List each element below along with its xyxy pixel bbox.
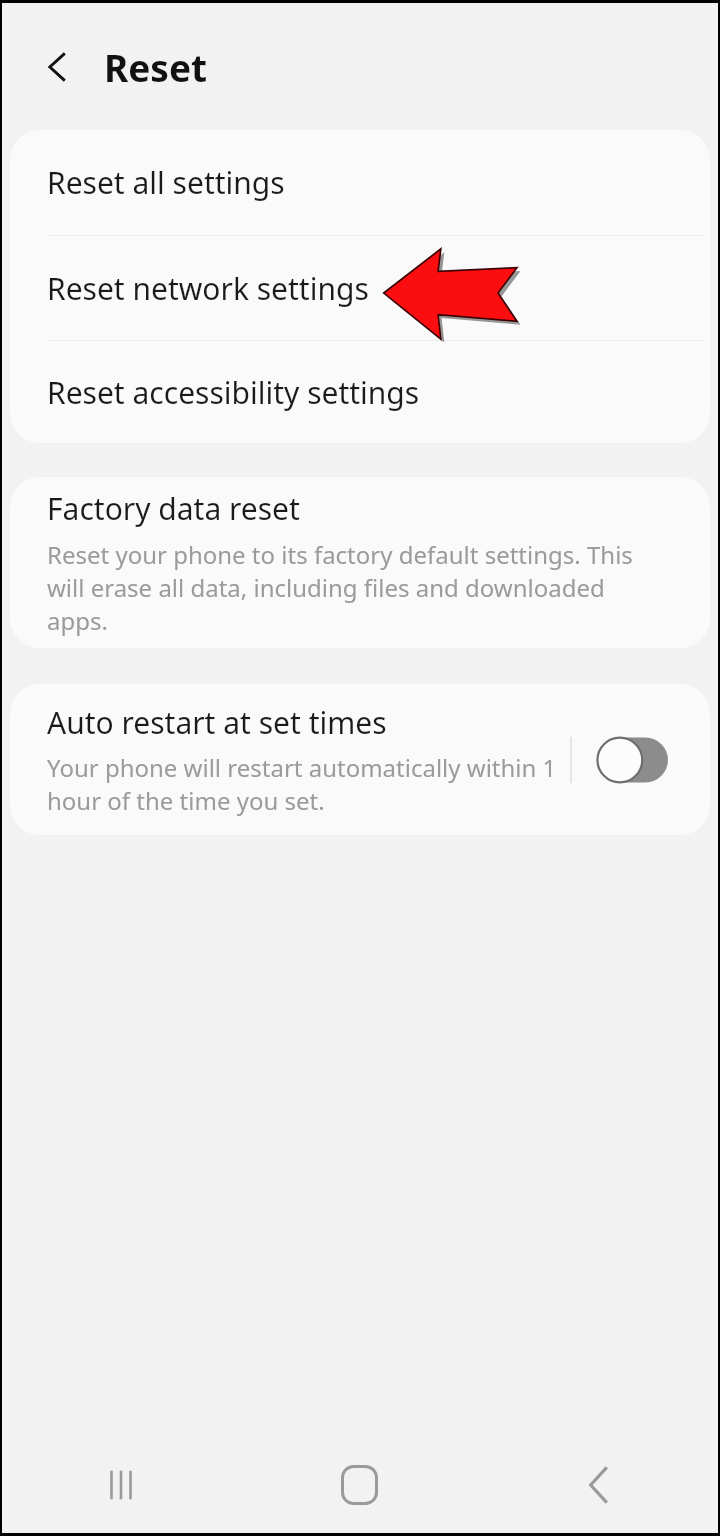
staticText: Reset all settings	[47, 162, 285, 203]
staticText: Reset	[104, 42, 208, 92]
staticText: Reset your phone to its factory default …	[47, 538, 670, 637]
staticText: Your phone will restart automatically wi…	[47, 751, 560, 817]
staticText: Reset network settings	[47, 268, 369, 309]
button[interactable]: Auto restart at set times	[47, 702, 560, 817]
staticText: Auto restart at set times	[47, 702, 387, 743]
button[interactable]: Home	[240, 1437, 479, 1533]
button[interactable]: Auto restart toggle	[596, 732, 668, 788]
button[interactable]: Back	[28, 37, 88, 97]
button[interactable]: Reset accessibility settings	[10, 341, 710, 443]
button[interactable]: Recents	[2, 1437, 240, 1533]
button[interactable]: Reset all settings	[10, 130, 710, 235]
button[interactable]: Factory data reset	[10, 477, 710, 648]
staticText: Reset accessibility settings	[47, 372, 420, 413]
button[interactable]: Back	[479, 1437, 718, 1533]
staticText: Factory data reset	[47, 488, 300, 529]
button[interactable]: Reset network settings	[10, 236, 710, 340]
